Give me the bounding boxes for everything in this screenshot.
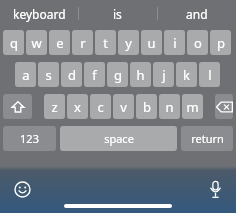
button[interactable]: a [15,62,36,87]
staticText: c [97,98,104,116]
button[interactable]: z [44,94,65,119]
staticText: e [56,34,64,52]
button[interactable]: s [38,62,59,87]
button[interactable]: f [84,62,105,87]
staticText: r [80,34,86,52]
staticText: 123 [20,131,39,146]
button[interactable]: o [187,30,208,55]
button[interactable]: y [118,30,139,55]
staticText: v [120,98,127,116]
button[interactable]: w [26,30,47,55]
staticText: l [208,66,212,84]
staticText: s [45,66,52,84]
staticText: return [191,131,224,146]
staticText: w [31,34,42,52]
staticText: t [103,34,108,52]
button[interactable]: k [176,62,197,87]
button[interactable]: l [199,62,220,87]
button[interactable]: p [210,30,231,55]
staticText: i [173,34,177,52]
button[interactable]: q [3,30,24,55]
staticText: m [186,98,199,116]
staticText: j [162,66,166,84]
button[interactable]: h [130,62,151,87]
button[interactable]: Dictation [209,181,222,198]
button[interactable]: v [113,94,134,119]
staticText: a [22,66,30,84]
button[interactable]: 123 [3,126,56,151]
staticText: d [68,66,76,84]
staticText: is [113,6,122,22]
staticText: n [165,98,174,116]
button[interactable]: r [72,30,93,55]
button[interactable]: e [49,30,70,55]
staticText: space [104,131,134,146]
button[interactable]: Shift [3,94,32,119]
button[interactable]: Emoji [15,182,30,197]
button[interactable]: is [78,0,157,27]
button[interactable]: d [61,62,82,87]
button[interactable]: space [60,126,177,151]
button[interactable]: i [164,30,185,55]
staticText: z [51,98,58,116]
button[interactable]: and [157,0,236,27]
button[interactable]: n [159,94,180,119]
staticText: k [183,66,190,84]
staticText: g [114,66,122,84]
staticText: keyboard [13,6,66,22]
button[interactable]: Delete [215,94,233,119]
staticText: x [74,98,81,116]
staticText: f [92,66,97,84]
staticText: and [186,6,208,22]
staticText: q [10,34,18,52]
staticText: p [217,34,225,52]
button[interactable]: g [107,62,128,87]
button[interactable]: return [181,126,233,151]
staticText: h [136,66,145,84]
staticText: b [143,98,151,116]
button[interactable]: u [141,30,162,55]
button[interactable]: b [136,94,157,119]
button[interactable]: t [95,30,116,55]
button[interactable]: x [67,94,88,119]
button[interactable]: m [182,94,203,119]
staticText: u [147,34,156,52]
staticText: o [194,34,202,52]
button[interactable]: c [90,94,111,119]
staticText: y [125,34,132,52]
button[interactable]: keyboard [0,0,78,27]
button[interactable]: j [153,62,174,87]
